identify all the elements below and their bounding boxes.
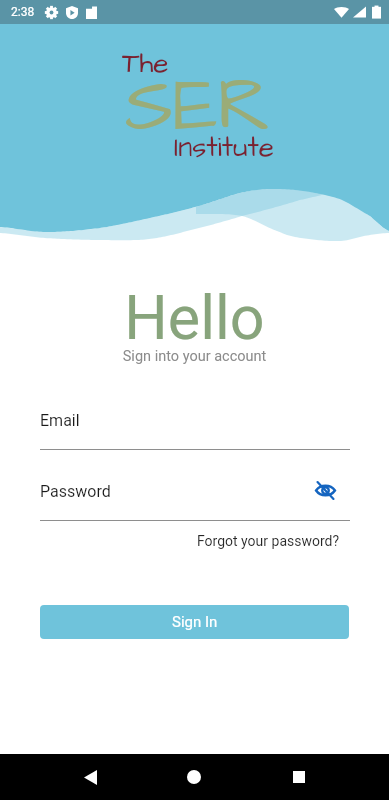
button[interactable]: Forgot your password? bbox=[191, 531, 349, 551]
button[interactable]: Show password bbox=[312, 477, 339, 504]
button[interactable]: Home bbox=[164, 754, 224, 800]
staticText: Email bbox=[40, 411, 80, 430]
staticText: Institute bbox=[174, 128, 274, 167]
staticText: 2:38 bbox=[11, 5, 35, 19]
button[interactable]: Sign In bbox=[40, 605, 349, 639]
staticText: Hello bbox=[0, 282, 389, 353]
staticText: The bbox=[122, 44, 169, 83]
staticText: SER bbox=[125, 55, 272, 159]
button[interactable]: Recent apps bbox=[269, 754, 329, 800]
staticText: Forgot your password? bbox=[197, 533, 340, 549]
button[interactable]: Back bbox=[60, 754, 120, 800]
staticText: Sign into your account bbox=[0, 348, 389, 365]
staticText: Password bbox=[40, 482, 111, 501]
staticText: Sign In bbox=[172, 613, 218, 631]
